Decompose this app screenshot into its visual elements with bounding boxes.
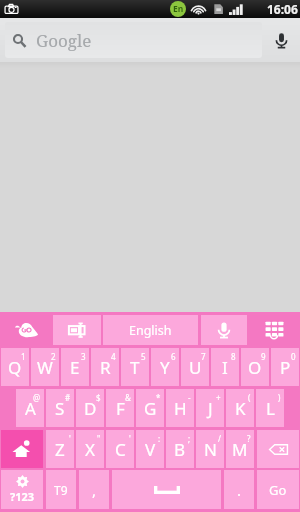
- staticText: P: [280, 356, 291, 379]
- staticText: $: [96, 392, 101, 403]
- staticText: *: [156, 392, 161, 403]
- staticText: W: [37, 356, 53, 379]
- button[interactable]: B: [166, 430, 194, 468]
- staticText: 3: [81, 351, 86, 362]
- button[interactable]: Q: [1, 348, 29, 386]
- staticText: N: [204, 438, 217, 461]
- button[interactable]: N: [196, 430, 224, 468]
- button[interactable]: G: [136, 389, 164, 427]
- staticText: #: [65, 392, 71, 403]
- button[interactable]: F: [106, 389, 134, 427]
- staticText: G: [144, 397, 157, 420]
- button[interactable]: R: [91, 348, 119, 386]
- button[interactable]: English: [103, 315, 198, 345]
- staticText: 1: [21, 351, 26, 362]
- staticText: ): [278, 392, 281, 403]
- staticText: Z: [55, 438, 65, 461]
- staticText: J: [208, 397, 213, 420]
- button[interactable]: Google: [5, 22, 262, 58]
- staticText: &: [125, 392, 131, 403]
- staticText: C: [115, 438, 126, 461]
- staticText: Go: [269, 481, 287, 499]
- button[interactable]: Z: [46, 430, 74, 468]
- button[interactable]: Voice input: [201, 315, 247, 345]
- button[interactable]: T: [121, 348, 149, 386]
- staticText: 6: [171, 351, 176, 362]
- staticText: X: [85, 438, 95, 461]
- staticText: O: [248, 356, 262, 379]
- staticText: V: [145, 438, 156, 461]
- button[interactable]: W: [31, 348, 59, 386]
- staticText: 2: [51, 351, 56, 362]
- staticText: Google: [36, 29, 92, 52]
- staticText: E: [70, 356, 80, 379]
- staticText: R: [100, 356, 111, 379]
- button[interactable]: GO Keyboard menu: [0, 312, 53, 348]
- button[interactable]: Y: [151, 348, 179, 386]
- staticText: (: [248, 392, 251, 403]
- button[interactable]: D: [76, 389, 104, 427]
- staticText: ?123: [10, 489, 35, 504]
- button[interactable]: U: [181, 348, 209, 386]
- staticText: /: [218, 433, 221, 444]
- staticText: ': [69, 433, 71, 444]
- staticText: 8: [231, 351, 236, 362]
- button[interactable]: O: [241, 348, 269, 386]
- button[interactable]: Backspace: [257, 430, 299, 468]
- staticText: H: [174, 397, 187, 420]
- button[interactable]: Keypad layout: [247, 312, 300, 348]
- button[interactable]: Space: [112, 470, 221, 509]
- button[interactable]: E: [61, 348, 89, 386]
- staticText: ': [129, 433, 131, 444]
- staticText: I: [222, 356, 228, 379]
- staticText: U: [189, 356, 202, 379]
- staticText: K: [235, 397, 246, 420]
- button[interactable]: ,: [79, 470, 109, 509]
- staticText: ,: [92, 480, 97, 500]
- staticText: ": [97, 433, 101, 444]
- button[interactable]: X: [76, 430, 104, 468]
- staticText: Q: [8, 356, 22, 379]
- button[interactable]: P: [271, 348, 299, 386]
- button[interactable]: ?123: [1, 470, 43, 509]
- button[interactable]: .: [224, 470, 254, 509]
- button[interactable]: T9: [46, 470, 76, 509]
- staticText: 5: [141, 351, 146, 362]
- button[interactable]: L: [256, 389, 284, 427]
- staticText: English: [129, 322, 172, 339]
- staticText: D: [84, 397, 97, 420]
- staticText: ?: [247, 433, 251, 444]
- staticText: 7: [201, 351, 206, 362]
- staticText: ;: [188, 433, 191, 444]
- staticText: M: [232, 438, 248, 461]
- staticText: -: [188, 392, 191, 403]
- other: Camera: [3, 1, 19, 17]
- button[interactable]: C: [106, 430, 134, 468]
- button[interactable]: K: [226, 389, 254, 427]
- button[interactable]: Voice search: [262, 18, 300, 62]
- staticText: 4: [111, 351, 116, 362]
- staticText: :: [158, 433, 161, 444]
- staticText: 0: [291, 351, 296, 362]
- button[interactable]: Theme: [53, 315, 101, 345]
- staticText: 9: [261, 351, 266, 362]
- staticText: Y: [160, 356, 170, 379]
- button[interactable]: S: [46, 389, 74, 427]
- staticText: En: [173, 3, 184, 15]
- button[interactable]: I: [211, 348, 239, 386]
- staticText: F: [116, 397, 125, 420]
- button[interactable]: Shift: [1, 430, 43, 468]
- button[interactable]: A: [16, 389, 44, 427]
- button[interactable]: M: [226, 430, 254, 468]
- staticText: A: [25, 397, 36, 420]
- button[interactable]: V: [136, 430, 164, 468]
- staticText: S: [55, 397, 65, 420]
- staticText: T9: [54, 482, 68, 498]
- staticText: L: [266, 397, 275, 420]
- staticText: .: [237, 480, 242, 500]
- staticText: +: [216, 392, 221, 403]
- staticText: T: [130, 356, 140, 379]
- button[interactable]: H: [166, 389, 194, 427]
- button[interactable]: J: [196, 389, 224, 427]
- button[interactable]: Go: [257, 470, 299, 509]
